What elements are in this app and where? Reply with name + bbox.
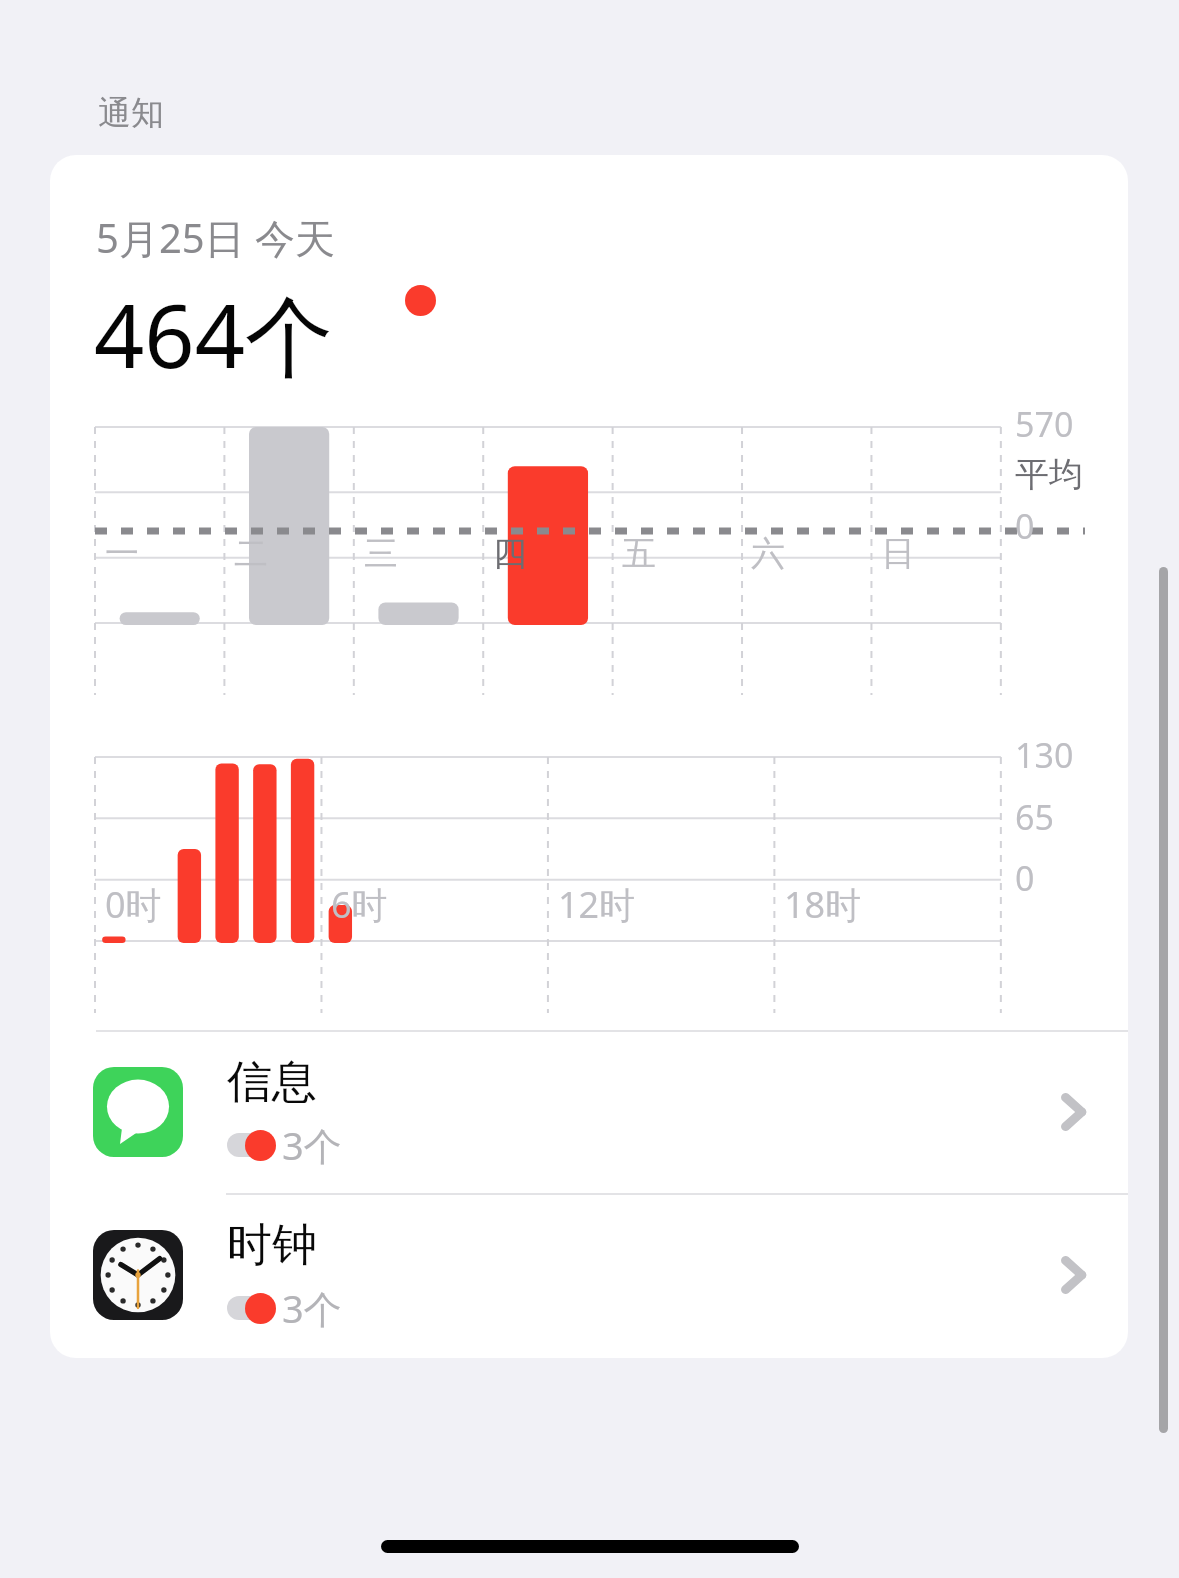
- staticText: 通知: [98, 92, 164, 134]
- staticText: 130: [1015, 732, 1074, 778]
- other: Open 信息 details: [1018, 1031, 1128, 1193]
- staticText: 平均: [1015, 453, 1083, 496]
- other: Open 时钟 details: [1018, 1194, 1128, 1356]
- staticText: 信息: [227, 1054, 317, 1111]
- button[interactable]: 时钟: [50, 1194, 1128, 1356]
- staticText: 二: [234, 532, 268, 575]
- staticText: 18时: [784, 880, 862, 929]
- staticText: 时钟: [227, 1217, 317, 1274]
- staticText: 0时: [105, 880, 162, 929]
- staticText: 四: [493, 532, 527, 575]
- staticText: 6时: [331, 880, 388, 929]
- staticText: 三: [364, 532, 398, 575]
- staticText: 65: [1015, 794, 1054, 840]
- button[interactable]: 信息: [50, 1031, 1128, 1193]
- staticText: 5月25日 今天: [96, 210, 336, 265]
- staticText: 464个: [94, 274, 334, 394]
- staticText: 日: [881, 532, 915, 575]
- staticText: 3个: [282, 1282, 342, 1334]
- staticText: 六: [751, 532, 785, 575]
- staticText: 0: [1015, 503, 1035, 549]
- staticText: 12时: [558, 880, 636, 929]
- staticText: 0: [1015, 855, 1035, 901]
- staticText: 3个: [282, 1119, 342, 1171]
- staticText: 一: [105, 532, 139, 575]
- staticText: 570: [1015, 401, 1074, 447]
- staticText: 五: [622, 532, 656, 575]
